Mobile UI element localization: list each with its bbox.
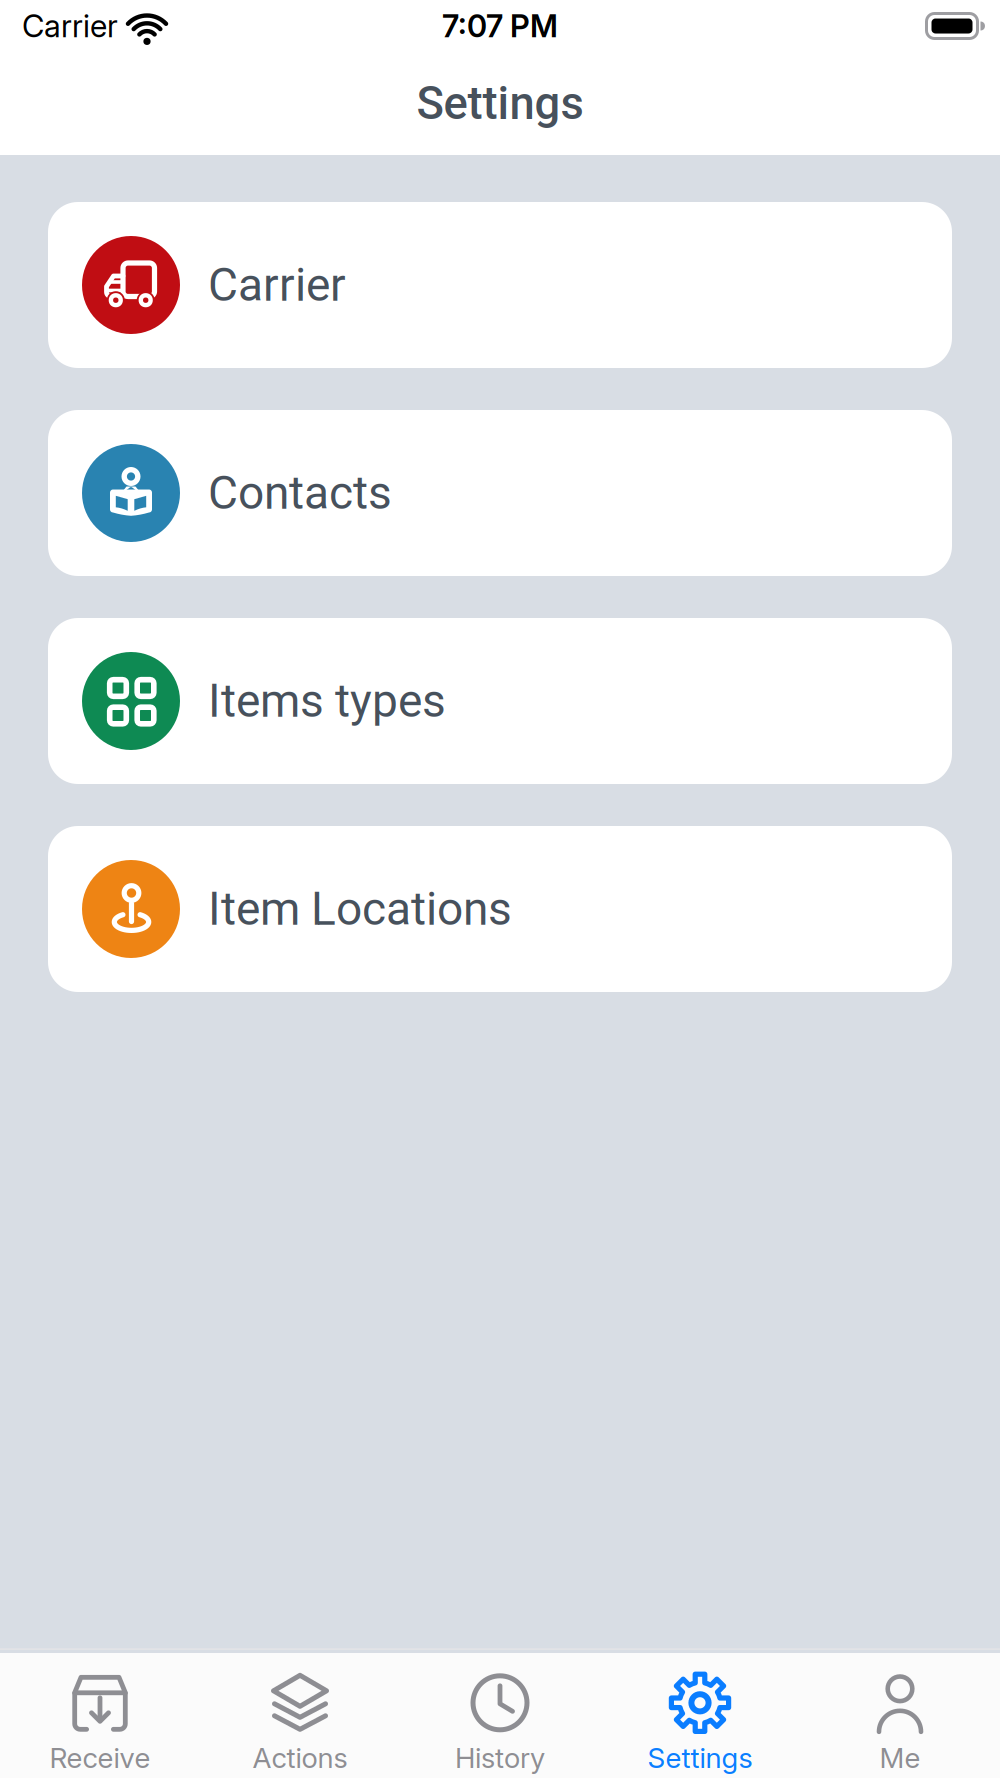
staticText: Item Locations — [208, 882, 512, 936]
button[interactable]: Settings — [600, 1671, 800, 1775]
staticText: History — [455, 1741, 545, 1775]
staticText: Receive — [49, 1741, 150, 1775]
button[interactable]: Item Locations — [48, 826, 952, 992]
button[interactable]: History — [400, 1671, 600, 1775]
button[interactable]: Receive — [0, 1671, 200, 1775]
staticText: Items types — [208, 674, 446, 728]
staticText: Settings — [647, 1741, 752, 1775]
button[interactable]: Contacts — [48, 410, 952, 576]
staticText: Carrier — [22, 7, 118, 45]
button[interactable]: Items types — [48, 618, 952, 784]
button[interactable]: Actions — [200, 1671, 400, 1775]
staticText: Carrier — [208, 258, 346, 312]
staticText: Contacts — [208, 466, 392, 520]
staticText: Actions — [252, 1741, 347, 1775]
staticText: 7:07 PM — [442, 7, 558, 45]
staticText: Settings — [416, 77, 583, 130]
staticText: Me — [879, 1741, 920, 1775]
button[interactable]: Me — [800, 1671, 1000, 1775]
button[interactable]: Carrier — [48, 202, 952, 368]
